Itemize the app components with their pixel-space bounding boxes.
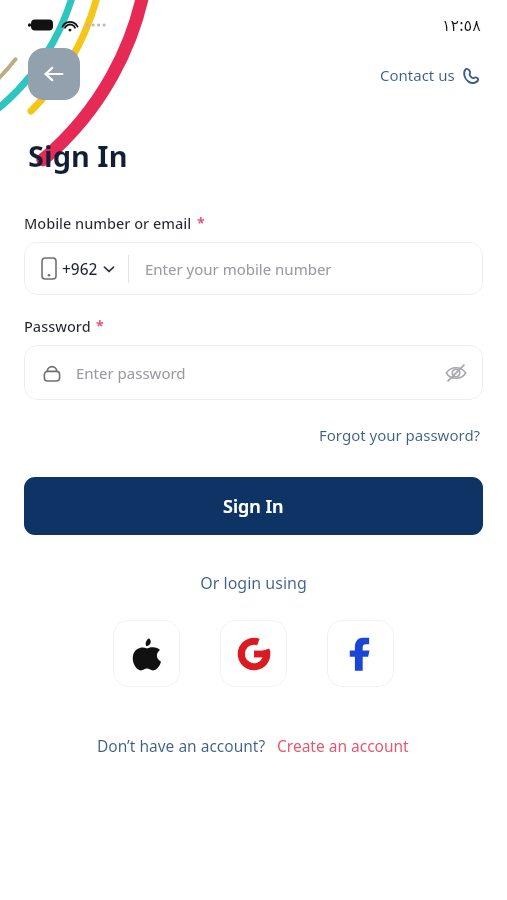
button[interactable]: Enter password (24, 345, 483, 400)
staticText: Create an account (277, 735, 409, 756)
staticText: * (197, 213, 205, 232)
staticText: Sign In (223, 494, 284, 519)
staticText: Don’t have an account? (97, 735, 266, 756)
button[interactable]: Back (28, 48, 80, 100)
button[interactable]: Sign in with Apple (113, 620, 180, 687)
button[interactable]: Show password (435, 352, 477, 394)
staticText: Enter password (76, 363, 186, 383)
staticText: Password (24, 316, 91, 336)
staticText: Enter your mobile number (145, 259, 332, 279)
staticText: * (96, 316, 104, 335)
button[interactable]: Create an account (275, 732, 411, 759)
staticText: +962 (62, 258, 98, 279)
button[interactable]: Forgot your password? (317, 422, 483, 448)
staticText: Contact us (380, 65, 455, 85)
staticText: Or login using (0, 572, 507, 594)
staticText: Sign In (28, 136, 128, 175)
staticText: Forgot your password? (319, 425, 481, 445)
button[interactable]: Sign in with Facebook (327, 620, 394, 687)
staticText: Mobile number or email (24, 213, 192, 233)
button[interactable]: Sign in with Google (220, 620, 287, 687)
button[interactable]: +962 (24, 242, 483, 295)
staticText: ١٢:٥٨ (442, 14, 481, 36)
button[interactable]: Sign In (24, 477, 483, 535)
button[interactable]: Contact us (376, 62, 483, 88)
